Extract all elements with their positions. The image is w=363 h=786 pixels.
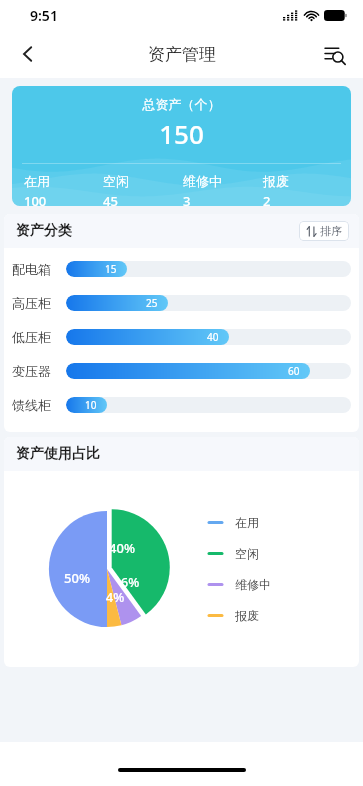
staticText: 配电箱 [12, 261, 66, 277]
staticText: 100 [24, 192, 47, 206]
staticText: 3 [183, 192, 191, 206]
button[interactable]: 报废 [209, 608, 259, 623]
staticText: 4% [99, 588, 131, 606]
staticText: 60 [288, 364, 300, 378]
staticText: 9:51 [30, 6, 58, 25]
staticText: 总资产（个） [12, 96, 351, 112]
button[interactable]: 在用 [209, 515, 259, 530]
button[interactable]: 低压柜 [12, 328, 351, 346]
staticText: 150 [12, 116, 351, 151]
button[interactable]: 馈线柜 [12, 396, 351, 414]
button[interactable]: 配电箱 [12, 260, 351, 278]
staticText: 资产分类 [16, 222, 72, 240]
button[interactable]: 空闲 [209, 546, 259, 561]
staticText: 空闲 [235, 546, 259, 561]
staticText: 在用 [235, 515, 259, 530]
staticText: 报废 [263, 173, 289, 189]
staticText: 变压器 [12, 363, 66, 379]
button[interactable]: 变压器 [12, 362, 351, 380]
staticText: 资产使用占比 [16, 445, 100, 463]
button[interactable]: Filter and search [315, 35, 353, 73]
staticText: 50% [61, 569, 93, 587]
staticText: 维修中 [235, 577, 271, 592]
button[interactable]: 总资产（个） [12, 86, 351, 206]
button[interactable]: 高压柜 [12, 294, 351, 312]
button[interactable]: 维修中 [209, 577, 271, 592]
staticText: 维修中 [183, 173, 222, 189]
staticText: 低压柜 [12, 329, 66, 345]
staticText: 15 [105, 262, 117, 276]
staticText: 2 [263, 192, 271, 206]
staticText: 25 [146, 296, 158, 310]
staticText: 馈线柜 [12, 397, 66, 413]
staticText: 报废 [235, 608, 259, 623]
staticText: 40 [207, 330, 219, 344]
staticText: 排序 [320, 224, 342, 238]
staticText: 在用 [24, 173, 50, 189]
staticText: 40% [106, 539, 138, 557]
button[interactable]: Back [8, 34, 48, 74]
staticText: 高压柜 [12, 295, 66, 311]
staticText: 10 [85, 398, 97, 412]
staticText: 6% [114, 573, 146, 591]
staticText: 资产管理 [148, 44, 216, 65]
staticText: 45 [103, 192, 118, 206]
staticText: 空闲 [103, 173, 129, 189]
button[interactable]: 排序 [299, 221, 349, 241]
